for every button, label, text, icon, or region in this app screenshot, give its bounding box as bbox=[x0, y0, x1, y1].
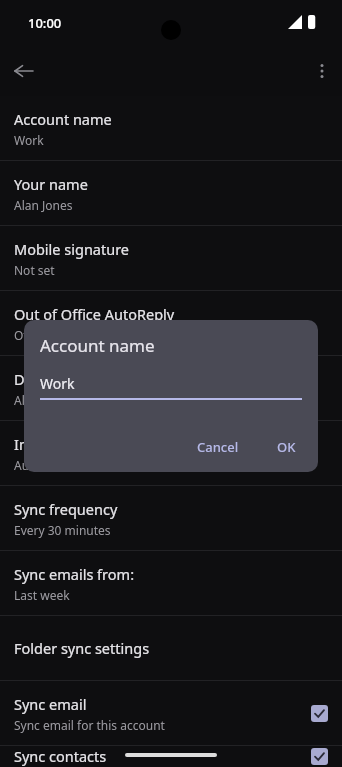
staticText: Sync email bbox=[14, 694, 87, 714]
button[interactable]: OK bbox=[267, 432, 306, 462]
button[interactable]: Folder sync settings bbox=[0, 616, 342, 680]
staticText: 10:00 bbox=[28, 14, 62, 32]
staticText: Automatic bbox=[14, 457, 72, 473]
staticText: Every 30 minutes bbox=[14, 522, 111, 538]
staticText: Folder sync settings bbox=[14, 638, 150, 658]
staticText: Cancel bbox=[197, 438, 239, 456]
staticText: Alan Jones bbox=[14, 197, 73, 213]
staticText: All bbox=[14, 392, 28, 408]
staticText: Work bbox=[14, 132, 44, 148]
button[interactable]: Cancel bbox=[187, 432, 249, 462]
staticText: Sync email for this account bbox=[14, 717, 165, 733]
staticText: Account name bbox=[40, 334, 155, 357]
staticText: Work bbox=[40, 374, 75, 393]
staticText: Your name bbox=[14, 174, 88, 194]
button[interactable]: Sync email bbox=[0, 681, 342, 745]
button[interactable]: Days to sync bbox=[0, 356, 342, 420]
staticText: Days to sync bbox=[14, 369, 99, 389]
button[interactable]: Inbox check frequency bbox=[0, 421, 342, 485]
button[interactable]: More options bbox=[306, 55, 338, 87]
staticText: Sync emails from: bbox=[14, 564, 135, 584]
button[interactable]: Account name bbox=[0, 96, 342, 160]
staticText: Account name bbox=[14, 109, 112, 129]
button[interactable]: Mobile signature bbox=[0, 226, 342, 290]
button[interactable]: Out of Office AutoReply bbox=[0, 291, 342, 355]
staticText: OK bbox=[277, 438, 296, 456]
staticText: Sync contacts bbox=[14, 746, 107, 766]
button[interactable]: Sync contacts bbox=[0, 746, 342, 767]
staticText: Inbox check frequency bbox=[14, 434, 168, 454]
staticText: Out of Office AutoReply bbox=[14, 304, 175, 324]
button[interactable]: Sync frequency bbox=[0, 486, 342, 550]
button[interactable]: Back bbox=[8, 55, 40, 87]
staticText: Sync frequency bbox=[14, 499, 118, 519]
button[interactable]: Your name bbox=[0, 161, 342, 225]
staticText: Mobile signature bbox=[14, 239, 130, 259]
staticText: Off bbox=[14, 327, 32, 343]
staticText: Not set bbox=[14, 262, 55, 278]
staticText: Last week bbox=[14, 587, 70, 603]
button[interactable]: Sync emails from: bbox=[0, 551, 342, 615]
